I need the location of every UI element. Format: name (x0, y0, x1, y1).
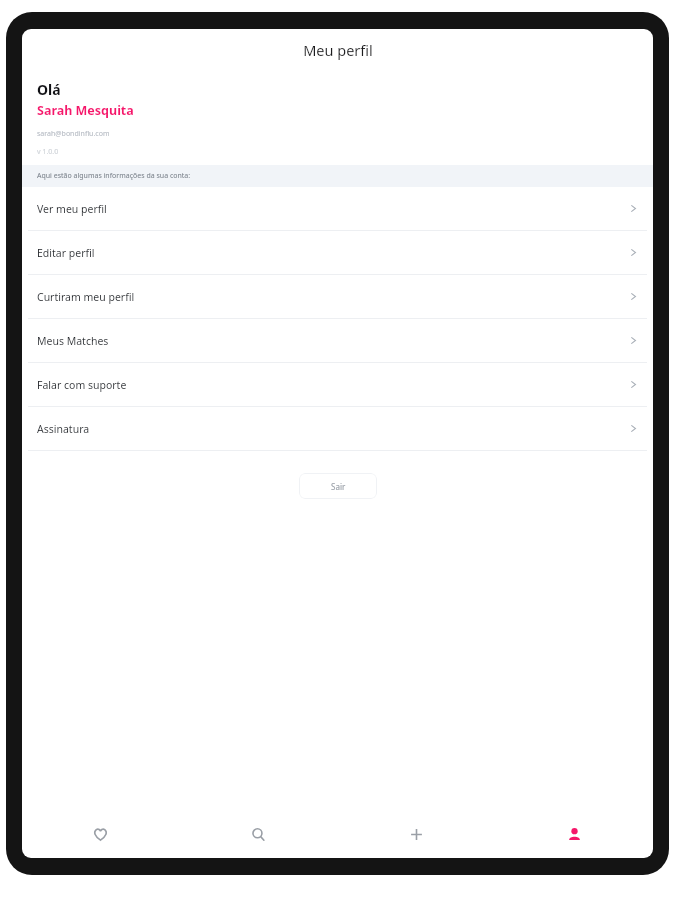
button[interactable]: Sair (299, 473, 377, 499)
button[interactable]: Create (337, 810, 495, 858)
staticText: Olá (37, 80, 61, 99)
button[interactable]: Search (179, 810, 337, 858)
staticText: Editar perfil (37, 246, 629, 260)
staticText: Meu perfil (303, 40, 373, 60)
staticText: Assinatura (37, 422, 629, 436)
button[interactable]: Editar perfil (22, 231, 653, 274)
staticText: Aqui estão algumas informações da sua co… (37, 171, 191, 181)
staticText: v 1.0.0 (37, 147, 59, 157)
button[interactable]: Favorites (22, 810, 179, 858)
staticText: Curtiram meu perfil (37, 290, 629, 304)
button[interactable]: Ver meu perfil (22, 187, 653, 230)
button[interactable]: Assinatura (22, 407, 653, 450)
staticText: Falar com suporte (37, 378, 629, 392)
staticText: sarah@bondinflu.com (37, 129, 110, 139)
button[interactable]: Falar com suporte (22, 363, 653, 406)
staticText: Ver meu perfil (37, 202, 629, 216)
button[interactable]: Meus Matches (22, 319, 653, 362)
staticText: Meus Matches (37, 334, 629, 348)
button[interactable]: Profile (495, 810, 653, 858)
staticText: Sarah Mesquita (37, 102, 134, 119)
staticText: Sair (331, 481, 346, 492)
button[interactable]: Curtiram meu perfil (22, 275, 653, 318)
